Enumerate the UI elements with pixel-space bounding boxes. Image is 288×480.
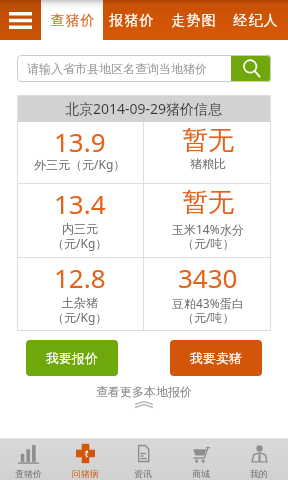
staticText: 我的 [250, 468, 268, 479]
button[interactable]: 暂无 [144, 122, 271, 183]
button[interactable]: 走势图 [164, 0, 226, 40]
staticText: 请输入省市县地区名查询当地猪价 [27, 61, 207, 76]
button[interactable]: Search [231, 55, 271, 82]
staticText: 查看更多本地报价 [96, 384, 192, 399]
button[interactable]: 问猪病 [57, 438, 114, 480]
button[interactable]: 查猪价 [41, 0, 103, 40]
staticText: （元/吨） [182, 235, 235, 251]
staticText: 外三元（元/Kg） [34, 156, 126, 172]
staticText: 13.4 [54, 186, 106, 221]
staticText: 12.8 [54, 260, 106, 295]
button[interactable]: 我要卖猪 [170, 340, 262, 376]
staticText: 内三元 [62, 221, 98, 236]
button[interactable]: 请输入省市县地区名查询当地猪价 [17, 55, 231, 82]
button[interactable]: Menu [0, 0, 41, 40]
button[interactable]: 3430 [144, 258, 271, 331]
staticText: 资讯 [134, 468, 152, 479]
staticText: 经纪人 [233, 12, 278, 30]
staticText: 暂无 [182, 124, 234, 157]
staticText: 问猪病 [72, 468, 99, 479]
staticText: 我要报价 [46, 350, 98, 366]
staticText: 走势图 [171, 12, 216, 30]
staticText: 3430 [178, 260, 238, 295]
staticText: 13.9 [54, 124, 106, 159]
button[interactable]: 12.8 [17, 258, 143, 331]
staticText: 查猪价 [50, 12, 95, 30]
button[interactable]: 商城 [172, 438, 230, 480]
button[interactable]: 13.4 [17, 184, 143, 257]
staticText: （元/Kg） [52, 235, 108, 251]
staticText: 查猪价 [15, 468, 42, 479]
button[interactable]: 13.9 [17, 122, 143, 183]
staticText: （元/Kg） [52, 309, 108, 325]
staticText: 我要卖猪 [190, 350, 242, 366]
button[interactable]: 报猪价 [103, 0, 164, 40]
staticText: 报猪价 [109, 12, 154, 30]
staticText: 猪粮比 [190, 156, 226, 171]
button[interactable]: 经纪人 [226, 0, 288, 40]
button[interactable]: 查猪价 [0, 438, 57, 480]
staticText: 暂无 [182, 186, 234, 219]
button[interactable]: 查看更多本地报价 [0, 384, 288, 408]
staticText: （元/吨） [182, 309, 235, 325]
button[interactable]: 暂无 [144, 184, 271, 257]
button[interactable]: 我的 [230, 438, 288, 480]
staticText: 豆粕43%蛋白 [172, 295, 244, 311]
staticText: 北京2014-09-29猪价信息 [65, 99, 223, 118]
staticText: 玉米14%水分 [172, 221, 244, 237]
button[interactable]: 资讯 [114, 438, 172, 480]
button[interactable]: 我要报价 [26, 340, 118, 376]
staticText: 商城 [192, 468, 210, 479]
staticText: 土杂猪 [62, 295, 98, 310]
